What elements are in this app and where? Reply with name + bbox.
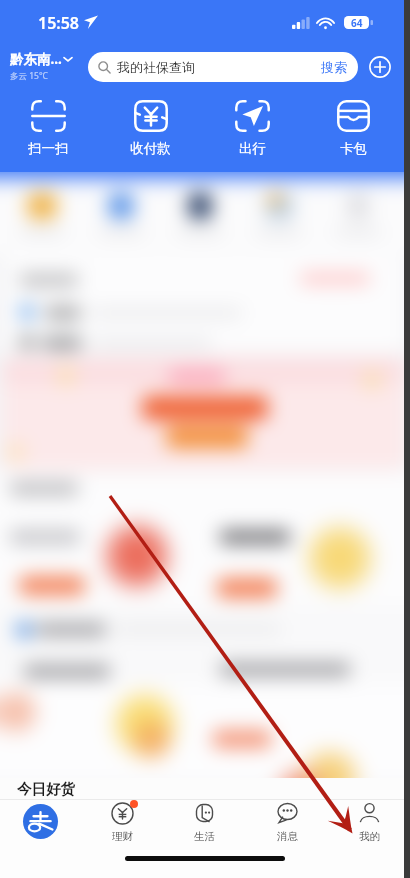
button[interactable]: 消息: [257, 801, 317, 847]
button[interactable]: 生活: [174, 801, 234, 847]
staticText: 收付款: [130, 140, 171, 157]
button[interactable]: Add: [369, 56, 391, 78]
staticText: 搜索: [321, 59, 347, 75]
button[interactable]: 扫一扫: [4, 100, 92, 157]
staticText: 黔东南...: [10, 50, 62, 68]
staticText: 生活: [194, 830, 215, 843]
button[interactable]: 卡包: [309, 100, 397, 157]
button[interactable]: 收付款: [106, 100, 194, 157]
staticText: 15:58: [38, 12, 80, 32]
staticText: 我的: [359, 830, 380, 843]
button[interactable]: 理财: [92, 801, 152, 847]
button[interactable]: 我的: [339, 801, 399, 847]
staticText: 消息: [277, 830, 298, 843]
staticText: 多云 15°C: [10, 70, 48, 82]
staticText: 我的社保查询: [117, 59, 195, 75]
button[interactable]: 黔东南...: [10, 50, 86, 82]
button[interactable]: 出行: [208, 100, 296, 157]
button[interactable]: 我的社保查询: [98, 52, 347, 82]
staticText: 出行: [239, 140, 266, 157]
staticText: 理财: [112, 830, 133, 843]
staticText: 扫一扫: [28, 140, 69, 157]
staticText: 64: [351, 16, 363, 29]
staticText: 今日好货: [17, 780, 75, 798]
button[interactable]: Home: [10, 801, 70, 847]
staticText: 卡包: [340, 140, 367, 157]
